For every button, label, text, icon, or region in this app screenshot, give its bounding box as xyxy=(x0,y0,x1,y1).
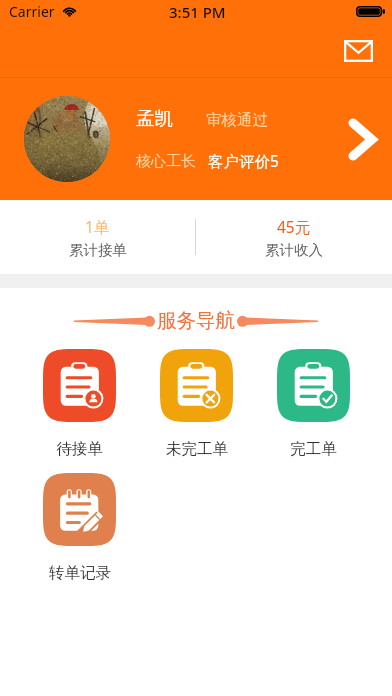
staticText: Carrier xyxy=(9,2,55,21)
button[interactable]: 1单 xyxy=(0,200,195,274)
staticText: 1单 xyxy=(85,216,110,237)
staticText: 45元 xyxy=(277,216,311,237)
button[interactable]: 孟凯 xyxy=(0,78,392,200)
staticText: 未完工单 xyxy=(166,439,228,459)
other: Profile details xyxy=(349,118,376,161)
staticText: 服务导航 xyxy=(157,308,235,333)
staticText: 累计收入 xyxy=(265,241,323,259)
staticText: 审核通过 xyxy=(206,110,268,130)
button[interactable]: Messages xyxy=(336,29,380,73)
button[interactable]: 完工单 xyxy=(277,349,350,459)
staticText: 核心工长 xyxy=(136,152,196,171)
staticText: 完工单 xyxy=(290,439,337,459)
staticText: 孟凯 xyxy=(136,107,173,130)
staticText: 3:51 PM xyxy=(169,2,226,22)
staticText: 转单记录 xyxy=(49,563,111,583)
staticText: 客户评价5 xyxy=(208,150,279,171)
button[interactable]: 转单记录 xyxy=(43,473,116,583)
button[interactable]: 待接单 xyxy=(43,349,116,459)
staticText: 累计接单 xyxy=(69,241,127,259)
button[interactable]: 未完工单 xyxy=(160,349,233,459)
button[interactable]: 45元 xyxy=(196,200,392,274)
staticText: 待接单 xyxy=(56,439,103,459)
